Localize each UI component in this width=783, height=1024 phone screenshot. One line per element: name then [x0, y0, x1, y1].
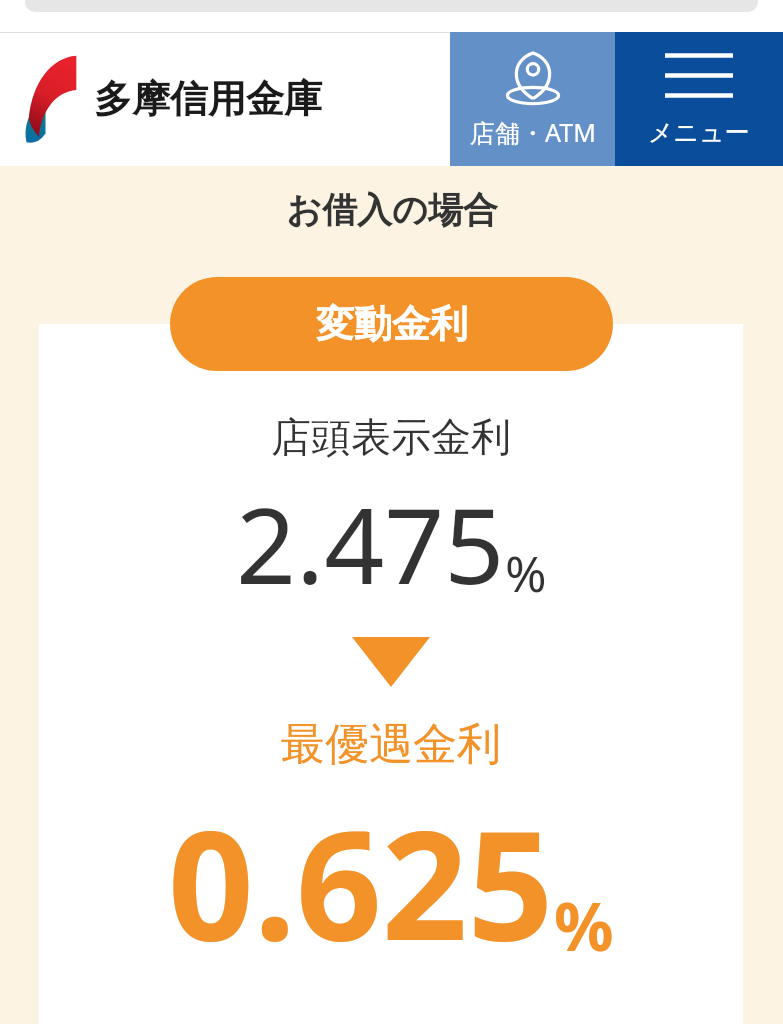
- staticText: 最優遇金利: [281, 717, 501, 772]
- staticText: メニュー: [648, 117, 750, 148]
- staticText: 0.625: [168, 780, 554, 984]
- button[interactable]: 多摩信用金庫: [0, 32, 783, 166]
- staticText: %: [505, 539, 547, 607]
- staticText: 多摩信用金庫: [94, 75, 322, 123]
- button[interactable]: メニュー: [615, 32, 783, 166]
- staticText: %: [554, 880, 614, 970]
- staticText: 店舗・ATM: [470, 115, 596, 149]
- button[interactable]: 店舗・ATM: [450, 32, 615, 166]
- staticText: お借入の場合: [286, 188, 498, 232]
- staticText: 2.475: [236, 472, 505, 615]
- staticText: 店頭表示金利: [271, 412, 511, 462]
- staticText: 変動金利: [316, 300, 468, 348]
- button[interactable]: 変動金利: [170, 277, 613, 371]
